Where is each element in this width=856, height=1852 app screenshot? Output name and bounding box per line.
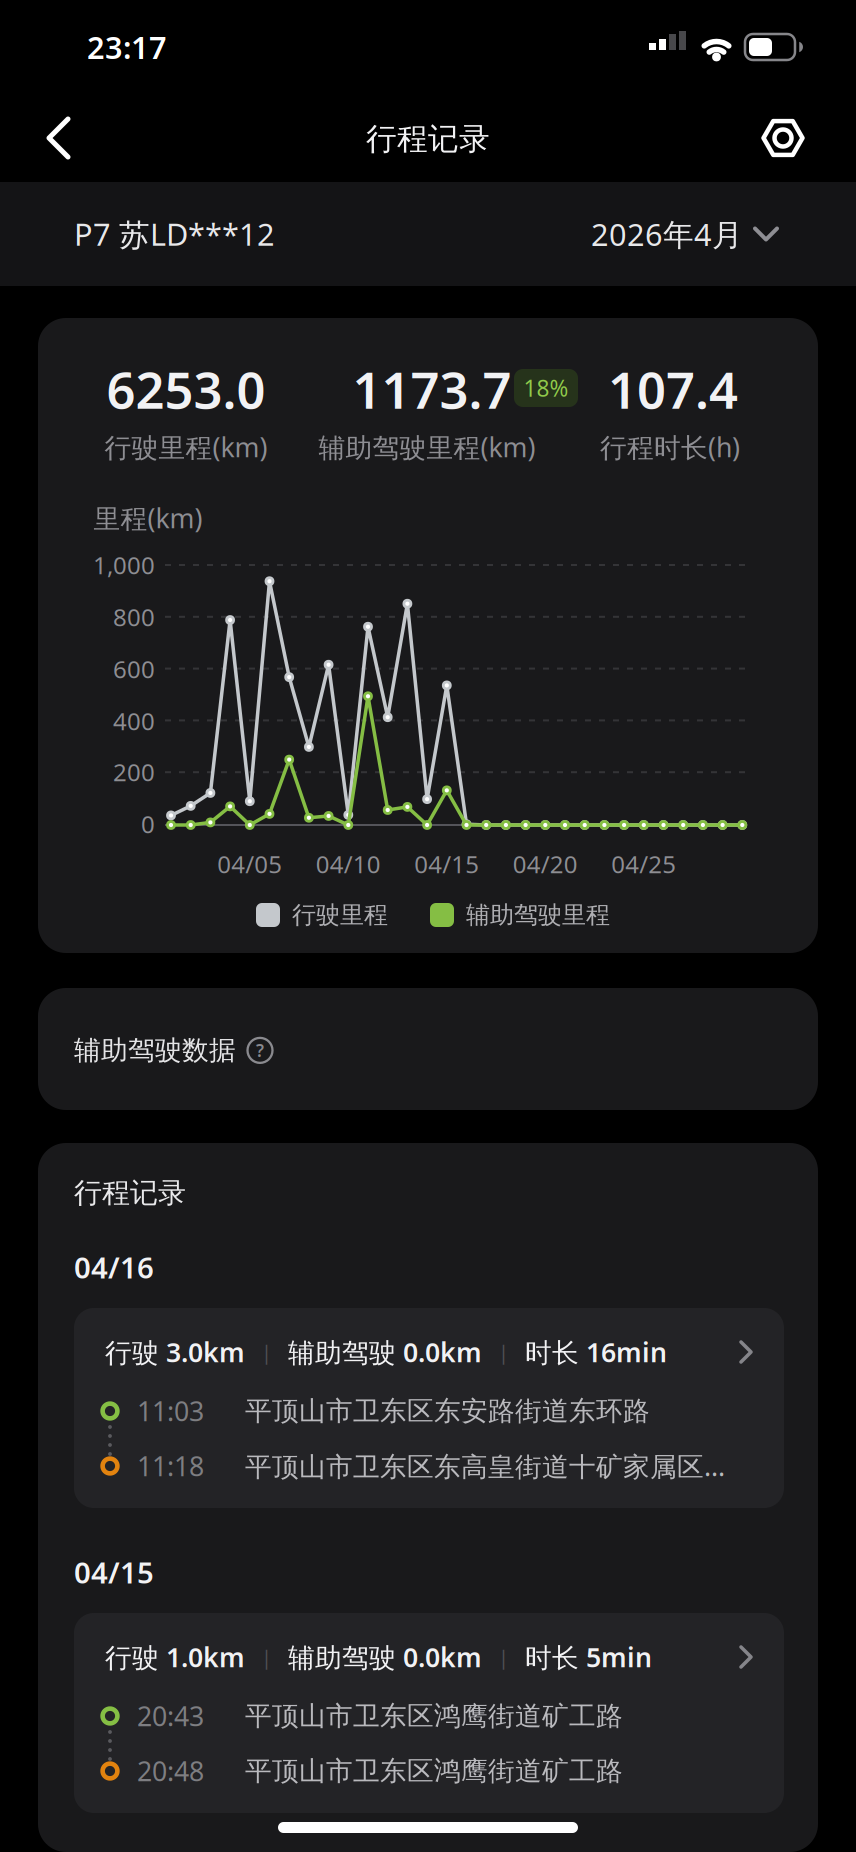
staticText: 1,000 [93,549,155,581]
staticText: 11:03 [137,1393,204,1429]
staticText: 18% [523,373,568,403]
staticText: 辅助驾驶 0.0km [288,1639,482,1675]
staticText: 0 [141,808,155,840]
staticText: 400 [113,705,155,737]
staticText: 行驶里程 [292,900,388,930]
staticText: 行驶 3.0km [105,1334,245,1370]
staticText: 20:48 [137,1753,204,1789]
staticText: 平顶山市卫东区鸿鹰街道矿工路 [245,1755,623,1787]
button[interactable]: 行驶 1.0km [74,1613,784,1813]
staticText: 平顶山市卫东区鸿鹰街道矿工路 [245,1700,623,1732]
staticText: 辅助驾驶 0.0km [288,1334,482,1370]
staticText: 平顶山市卫东区东高皇街道十矿家属区... [245,1448,725,1484]
button[interactable]: 辅助驾驶数据 [38,988,818,1110]
staticText: 行程记录 [366,120,490,158]
staticText: 04/16 [74,1247,154,1286]
staticText: | [498,1644,509,1670]
button[interactable]: 2026年4月 [591,214,778,254]
button[interactable]: 行驶 3.0km [74,1308,784,1508]
staticText: 6253.0 [106,355,265,423]
staticText: 里程(km) [93,500,202,536]
staticText: 04/25 [611,848,676,880]
button[interactable] [751,109,815,167]
button[interactable] [26,109,90,167]
staticText: 行驶里程(km) [104,429,267,465]
staticText: 辅助驾驶里程(km) [318,429,535,465]
staticText: 04/15 [414,848,479,880]
staticText: 23:17 [87,27,167,67]
staticText: 11:18 [137,1448,204,1484]
staticText: 行程记录 [74,1176,186,1210]
staticText: 1173.7 [352,355,511,423]
staticText: P7 苏LD***12 [74,214,275,254]
staticText: | [261,1339,272,1365]
staticText: 辅助驾驶数据 [74,1034,236,1067]
staticText: 800 [113,601,155,633]
staticText: 2026年4月 [591,214,743,254]
staticText: 107.4 [608,355,738,423]
staticText: | [261,1644,272,1670]
staticText: 20:43 [137,1698,204,1734]
staticText: 04/05 [217,848,282,880]
staticText: 时长 5min [525,1639,652,1675]
staticText: 600 [113,653,155,685]
staticText: 时长 16min [525,1334,667,1370]
staticText: 行程时长(h) [600,429,740,465]
staticText: 200 [113,756,155,788]
staticText: 辅助驾驶里程 [466,900,610,930]
staticText: 04/10 [316,848,381,880]
staticText: ? [256,1039,264,1062]
staticText: | [498,1339,509,1365]
staticText: 行驶 1.0km [105,1639,245,1675]
staticText: 平顶山市卫东区东安路街道东环路 [245,1395,650,1427]
staticText: 04/20 [513,848,578,880]
staticText: 04/15 [74,1552,154,1591]
